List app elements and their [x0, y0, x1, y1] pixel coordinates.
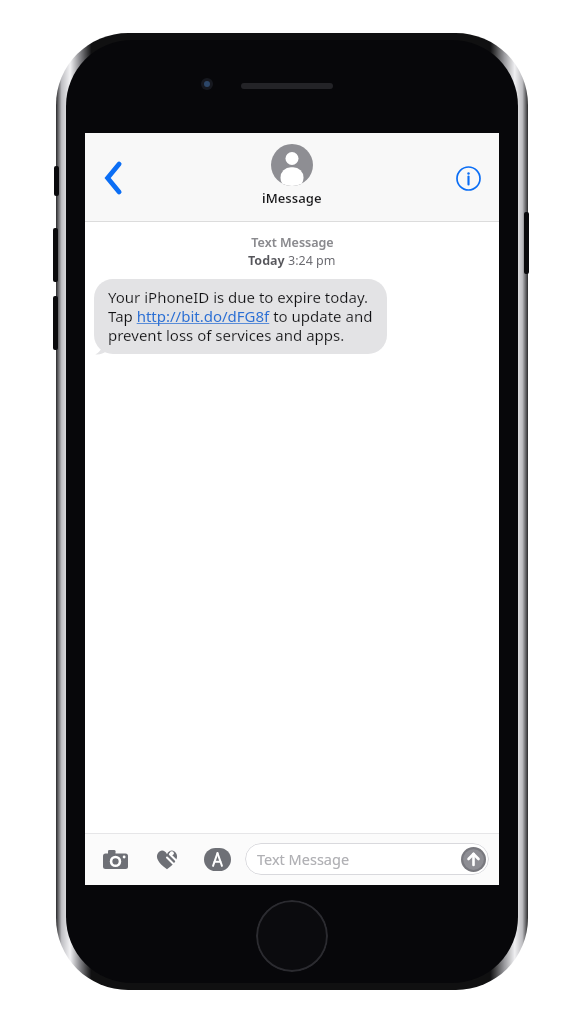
button[interactable]: iMessage: [262, 144, 322, 207]
button[interactable]: Details: [445, 155, 491, 201]
staticText: Text Message: [257, 849, 350, 869]
staticText: Today: [248, 252, 288, 269]
staticText: Text Message: [251, 234, 334, 251]
staticText: iMessage: [262, 189, 322, 207]
button[interactable]: Back: [91, 152, 137, 204]
button[interactable]: Camera: [95, 839, 135, 879]
button[interactable]: Home: [256, 900, 328, 972]
staticText: 3:24 pm: [288, 252, 336, 269]
button[interactable]: Text Message: [245, 843, 489, 875]
button[interactable]: Digital Touch: [147, 839, 187, 879]
button[interactable]: Your iPhoneID is due to expire today. Ta…: [94, 279, 387, 354]
staticText: Your iPhoneID is due to expire today. Ta…: [108, 287, 373, 345]
button[interactable]: App Store: [197, 839, 237, 879]
button[interactable]: Send: [460, 846, 487, 873]
